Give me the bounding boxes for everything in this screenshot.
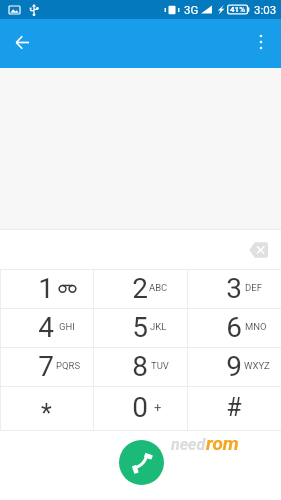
button[interactable]: 0 xyxy=(94,387,187,430)
button[interactable]: # xyxy=(188,387,281,430)
button[interactable]: 3 xyxy=(188,270,281,308)
button[interactable]: 5 xyxy=(94,309,187,347)
staticText: 6 xyxy=(226,311,242,344)
staticText: rom xyxy=(206,432,239,454)
button[interactable]: Backspace xyxy=(244,236,272,264)
button[interactable]: Call xyxy=(119,440,164,485)
staticText: 3G xyxy=(184,3,199,16)
staticText: 4 xyxy=(38,311,54,344)
staticText: 2 xyxy=(132,272,148,305)
button[interactable]: * xyxy=(1,387,93,430)
staticText: need xyxy=(171,435,206,454)
staticText: TUV xyxy=(151,360,169,371)
staticText: 1 xyxy=(38,272,54,305)
staticText: * xyxy=(41,399,52,428)
staticText: JKL xyxy=(150,321,167,332)
button[interactable]: Back xyxy=(6,26,38,58)
staticText: PQRS xyxy=(56,360,81,371)
button[interactable]: 6 xyxy=(188,309,281,347)
staticText: 3 xyxy=(226,272,242,305)
staticText: 0 xyxy=(132,391,148,424)
staticText: WXYZ xyxy=(244,360,270,371)
staticText: 41% xyxy=(230,5,246,14)
button[interactable]: 4 xyxy=(1,309,93,347)
staticText: 3:03 xyxy=(254,3,277,16)
staticText: 8 xyxy=(132,350,148,383)
staticText: # xyxy=(226,393,242,422)
staticText: 7 xyxy=(38,350,54,383)
button[interactable]: 9 xyxy=(188,348,281,386)
button[interactable]: 8 xyxy=(94,348,187,386)
button[interactable]: 2 xyxy=(94,270,187,308)
staticText: MNO xyxy=(245,321,267,332)
staticText: ABC xyxy=(149,282,168,293)
button[interactable]: 1 xyxy=(1,270,93,308)
staticText: 9 xyxy=(226,350,242,383)
staticText: + xyxy=(154,400,162,415)
staticText: DEF xyxy=(245,282,262,293)
button[interactable]: More options xyxy=(245,26,277,58)
staticText: GHI xyxy=(59,321,75,332)
button[interactable]: 7 xyxy=(1,348,93,386)
staticText: 5 xyxy=(132,311,148,344)
